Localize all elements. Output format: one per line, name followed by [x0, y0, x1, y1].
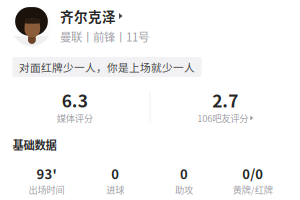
staticText: 6.3 [62, 91, 88, 109]
staticText: 媒体评分 [57, 113, 93, 123]
staticText: 助攻 [175, 185, 193, 194]
staticText: 0/0 [242, 166, 263, 180]
staticText: 基础数据 [12, 138, 56, 150]
staticText: 2.7 [212, 91, 238, 109]
staticText: 0 [180, 166, 188, 180]
button[interactable]: 齐尔克泽 [0, 0, 300, 56]
staticText: 黄牌/红牌 [233, 185, 273, 194]
button[interactable]: 2.7 [150, 92, 300, 123]
staticText: 对面红牌少一人，你是上场就少一人 [19, 61, 195, 73]
staticText: 106吧友评分 [197, 113, 248, 123]
staticText: 93' [36, 166, 56, 180]
staticText: 进球 [106, 185, 124, 194]
staticText: 0 [111, 166, 119, 180]
staticText: 齐尔克泽 [60, 9, 116, 23]
staticText: 出场时间 [28, 185, 64, 194]
staticText: 曼联丨前锋丨11号 [60, 30, 149, 43]
